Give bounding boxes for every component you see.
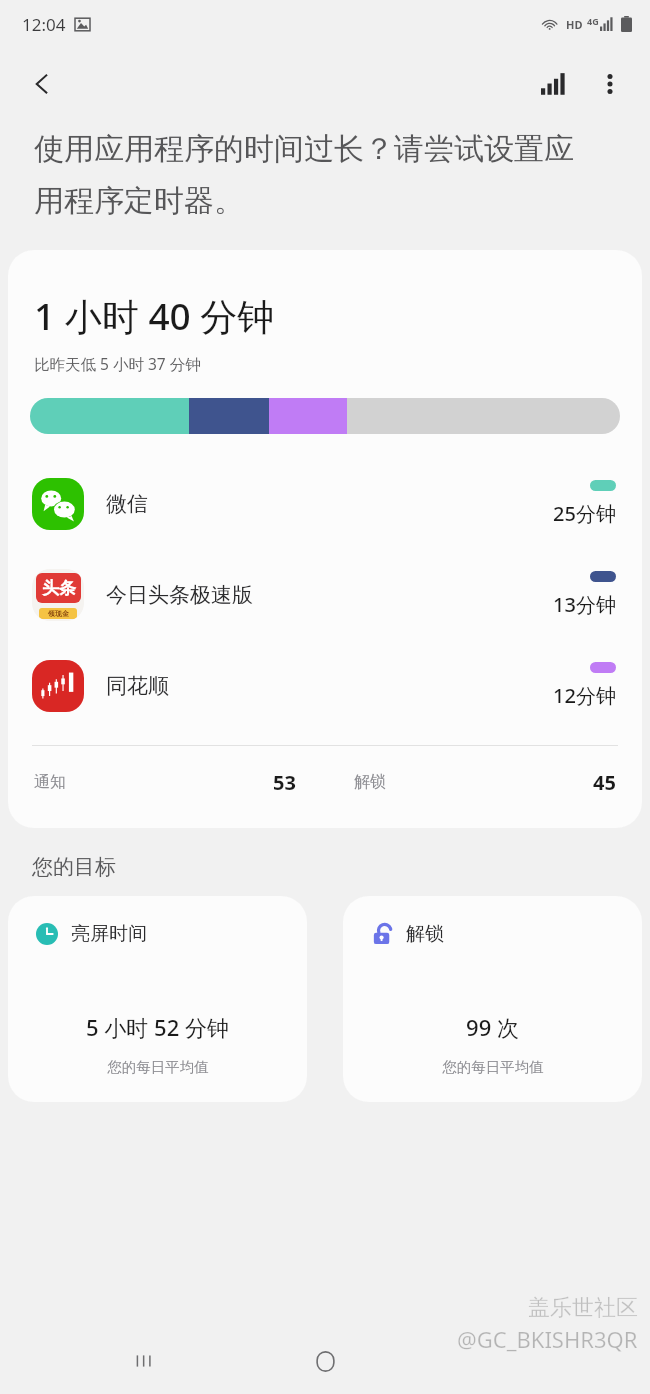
staticText: @GC_BKISHR3QR (457, 1324, 638, 1354)
staticText: 解锁 (406, 922, 444, 946)
staticText: 您的每日平均值 (442, 1058, 544, 1076)
button[interactable]: 亮屏时间 (8, 896, 307, 1102)
button[interactable]: More options (582, 56, 638, 112)
staticText: 53 (273, 769, 296, 796)
staticText: 解锁 (354, 772, 386, 792)
staticText: 1 小时 40 分钟 (34, 290, 275, 341)
staticText: HD (566, 17, 583, 32)
staticText: 使用应用程序的时间过长？请尝试设置应用程序定时器。 (34, 130, 590, 220)
staticText: 今日头条极速版 (106, 582, 253, 608)
button[interactable]: 头条 (8, 549, 642, 640)
button[interactable]: 解锁 (343, 896, 642, 1102)
staticText: 同花顺 (106, 673, 169, 699)
staticText: 13分钟 (553, 591, 616, 618)
button[interactable]: Recents (115, 1331, 175, 1391)
staticText: 12分钟 (553, 682, 616, 709)
staticText: 微信 (106, 491, 148, 517)
button[interactable]: Back (475, 1331, 535, 1391)
staticText: 25分钟 (553, 500, 616, 527)
staticText: 4G (587, 15, 599, 27)
staticText: 45 (593, 769, 616, 796)
staticText: 比昨天低 5 小时 37 分钟 (34, 353, 201, 374)
button[interactable]: Back (14, 56, 70, 112)
staticText: 通知 (34, 772, 66, 792)
staticText: 盖乐世社区 (528, 1294, 638, 1322)
staticText: 领现金 (48, 609, 69, 618)
staticText: 5 小时 52 分钟 (86, 1012, 229, 1042)
staticText: 12:04 (22, 13, 66, 36)
button[interactable]: 微信 (8, 458, 642, 549)
button[interactable]: 1 小时 40 分钟 (8, 250, 642, 828)
staticText: 您的目标 (32, 854, 116, 880)
staticText: 99 次 (466, 1012, 519, 1042)
staticText: 您的每日平均值 (107, 1058, 209, 1076)
staticText: 亮屏时间 (71, 922, 147, 946)
button[interactable]: Home (295, 1331, 355, 1391)
button[interactable]: 同花顺 (8, 640, 642, 731)
button[interactable]: Statistics (526, 56, 582, 112)
staticText: 头条 (42, 578, 76, 599)
